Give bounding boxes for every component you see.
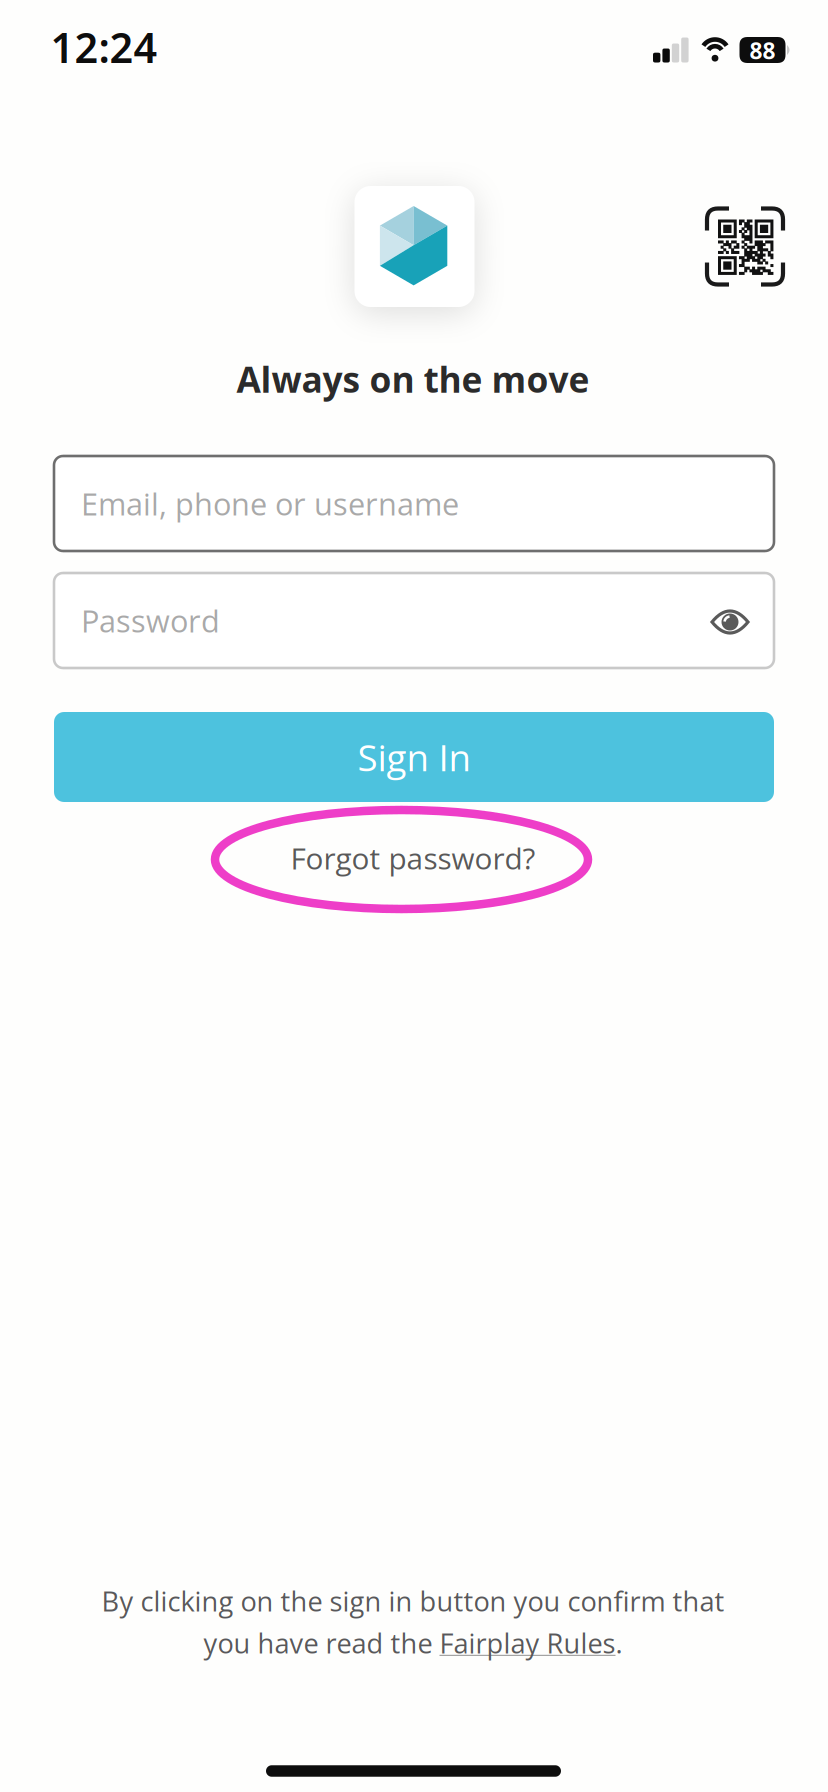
button[interactable]: Password: [54, 573, 774, 668]
button[interactable]: Forgot password?: [290, 838, 535, 878]
staticText: Email, phone or username: [81, 483, 459, 524]
button[interactable]: Email, phone or username: [54, 456, 774, 551]
staticText: By clicking on the sign in button you co…: [101, 1582, 724, 1619]
staticText: 12:24: [50, 20, 157, 74]
button[interactable]: Show password: [712, 610, 748, 634]
staticText: 88: [749, 35, 775, 65]
button[interactable]: you have read the Fairplay Rules.: [203, 1624, 622, 1661]
button[interactable]: Sign In: [54, 712, 774, 802]
staticText: Sign In: [357, 732, 470, 782]
staticText: Always on the move: [236, 355, 589, 403]
staticText: Forgot password?: [290, 838, 535, 878]
staticText: you have read the Fairplay Rules.: [203, 1624, 622, 1661]
staticText: Password: [81, 600, 220, 641]
button[interactable]: Scan QR code: [707, 208, 783, 284]
